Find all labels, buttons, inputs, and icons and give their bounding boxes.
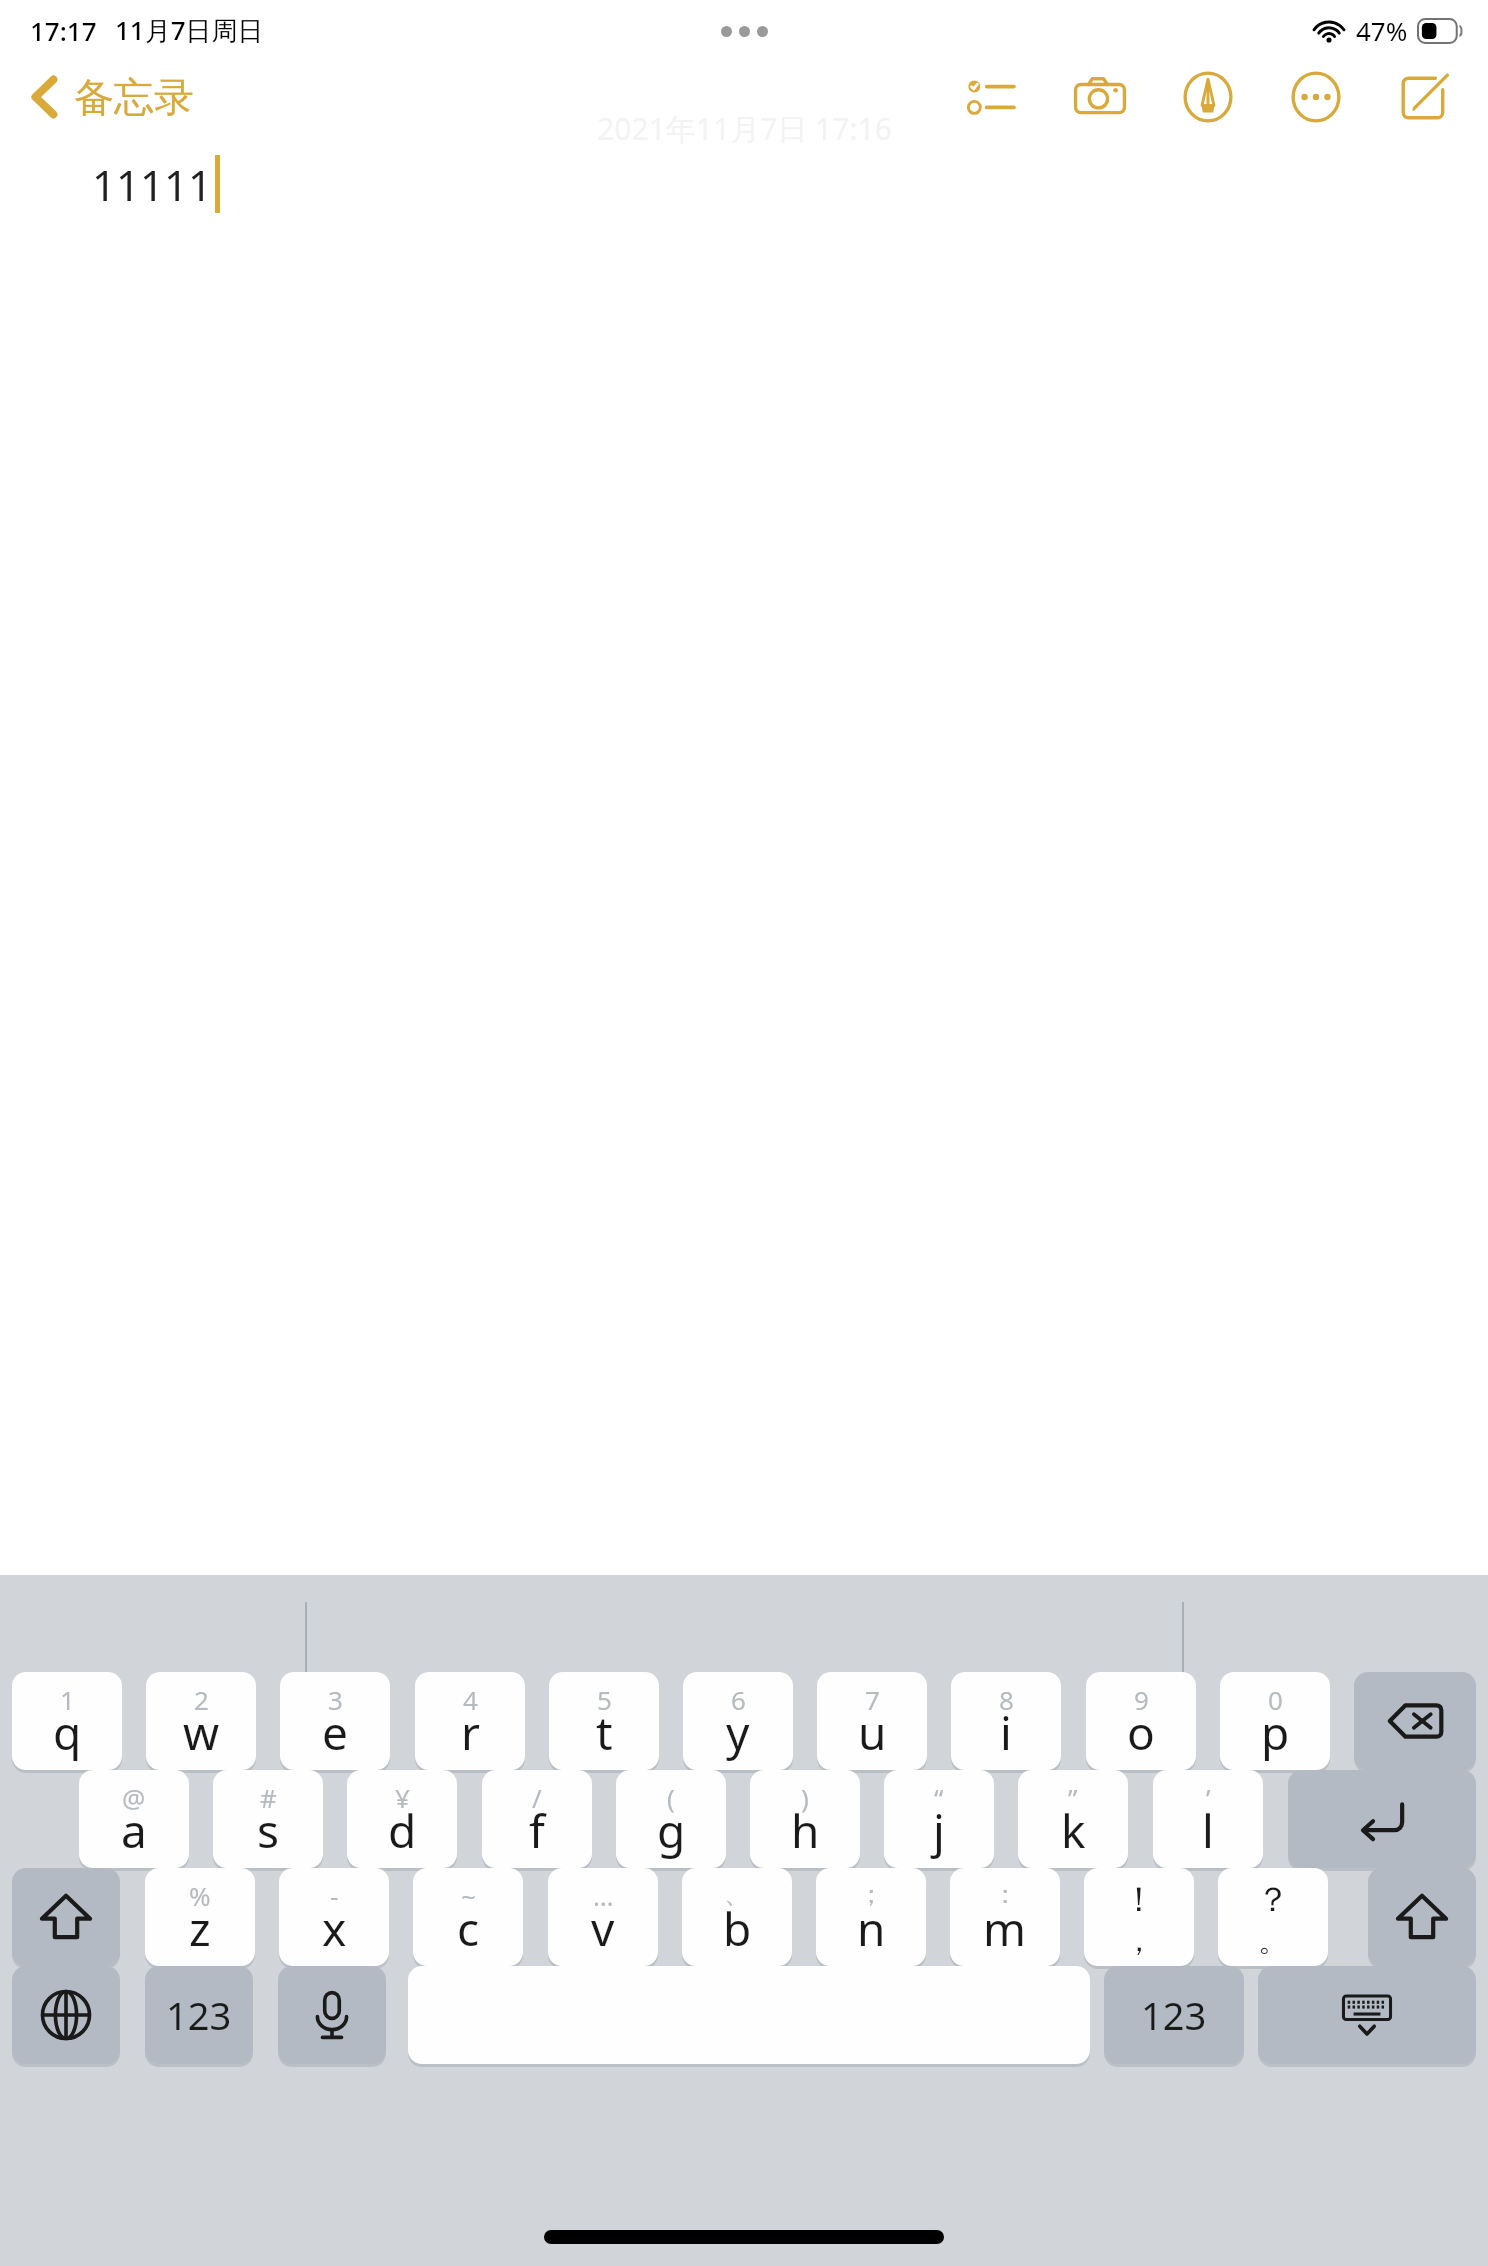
button[interactable]: ” bbox=[1018, 1770, 1128, 1868]
staticText: s bbox=[257, 1799, 280, 1862]
button[interactable]: ¥ bbox=[347, 1770, 457, 1868]
staticText: n bbox=[857, 1897, 886, 1960]
staticText: 9 bbox=[1134, 1682, 1149, 1717]
button[interactable]: 7 bbox=[817, 1672, 927, 1770]
staticText: y bbox=[726, 1701, 750, 1764]
staticText: g bbox=[657, 1799, 686, 1862]
staticText: 。 bbox=[1258, 1922, 1288, 1960]
button[interactable]: 备忘录 bbox=[22, 66, 202, 128]
staticText: 备忘录 bbox=[74, 72, 194, 122]
button[interactable]: “ bbox=[884, 1770, 994, 1868]
button[interactable]: Checklist bbox=[956, 62, 1028, 132]
button[interactable]: ； bbox=[816, 1868, 926, 1966]
button[interactable]: 6 bbox=[683, 1672, 793, 1770]
staticText: 1 bbox=[60, 1682, 75, 1717]
button[interactable]: Compose bbox=[1388, 62, 1460, 132]
staticText: 11111 bbox=[92, 156, 213, 213]
button[interactable]: ！ bbox=[1084, 1868, 1194, 1966]
staticText: w bbox=[183, 1701, 220, 1764]
staticText: u bbox=[858, 1701, 887, 1764]
button[interactable]: 、 bbox=[682, 1868, 792, 1966]
button[interactable]: 8 bbox=[951, 1672, 1061, 1770]
button[interactable]: 4 bbox=[415, 1672, 525, 1770]
staticText: ， bbox=[1124, 1922, 1154, 1960]
staticText: f bbox=[529, 1799, 545, 1862]
button[interactable]: Backspace bbox=[1354, 1672, 1476, 1770]
button[interactable]: ？ bbox=[1218, 1868, 1328, 1966]
staticText: ！ bbox=[1122, 1878, 1156, 1921]
staticText: 2021年11月7日 17:16 bbox=[597, 108, 892, 149]
staticText: 123 bbox=[1141, 1989, 1207, 2041]
button[interactable]: ’ bbox=[1153, 1770, 1263, 1868]
staticText: “ bbox=[934, 1780, 944, 1815]
button[interactable]: - bbox=[279, 1868, 389, 1966]
staticText: ” bbox=[1068, 1780, 1078, 1815]
button[interactable]: Switch keyboard bbox=[12, 1966, 120, 2064]
staticText: a bbox=[121, 1799, 147, 1862]
staticText: … bbox=[593, 1878, 614, 1913]
staticText: r bbox=[461, 1701, 480, 1764]
button[interactable]: 2 bbox=[146, 1672, 256, 1770]
staticText: 3 bbox=[328, 1682, 343, 1717]
button[interactable]: ~ bbox=[413, 1868, 523, 1966]
button[interactable]: 9 bbox=[1086, 1672, 1196, 1770]
staticText: b bbox=[723, 1897, 752, 1960]
button[interactable]: % bbox=[145, 1868, 255, 1966]
staticText: ？ bbox=[1256, 1878, 1290, 1921]
staticText: ~ bbox=[461, 1878, 476, 1913]
staticText: 47% bbox=[1356, 13, 1408, 48]
staticText: 11月7日周日 bbox=[115, 12, 264, 48]
button[interactable]: … bbox=[548, 1868, 658, 1966]
button[interactable]: ) bbox=[750, 1770, 860, 1868]
button[interactable]: 3 bbox=[280, 1672, 390, 1770]
staticText: v bbox=[591, 1897, 615, 1960]
button[interactable]: # bbox=[213, 1770, 323, 1868]
staticText: ( bbox=[667, 1780, 675, 1815]
staticText: / bbox=[532, 1780, 542, 1815]
button[interactable]: Camera bbox=[1064, 62, 1136, 132]
staticText: p bbox=[1261, 1701, 1290, 1764]
button[interactable]: 123 bbox=[145, 1966, 253, 2064]
staticText: i bbox=[1000, 1701, 1012, 1764]
staticText: 、 bbox=[724, 1878, 750, 1911]
staticText: ； bbox=[858, 1878, 884, 1911]
button[interactable]: ： bbox=[950, 1868, 1060, 1966]
staticText: 8 bbox=[999, 1682, 1014, 1717]
button[interactable]: Shift bbox=[12, 1868, 120, 1966]
button[interactable]: @ bbox=[79, 1770, 189, 1868]
button[interactable]: / bbox=[482, 1770, 592, 1868]
staticText: z bbox=[189, 1897, 211, 1960]
staticText: 5 bbox=[597, 1682, 612, 1717]
button[interactable]: More bbox=[1280, 62, 1352, 132]
staticText: ’ bbox=[1206, 1780, 1211, 1815]
staticText: ： bbox=[992, 1878, 1018, 1911]
button[interactable]: Shift bbox=[1368, 1868, 1476, 1966]
button[interactable]: Hide keyboard bbox=[1258, 1966, 1476, 2064]
staticText: ) bbox=[801, 1780, 809, 1815]
staticText: @ bbox=[122, 1780, 146, 1815]
staticText: h bbox=[791, 1799, 820, 1862]
staticText: - bbox=[330, 1878, 339, 1913]
staticText: e bbox=[322, 1701, 348, 1764]
button[interactable]: Dictation bbox=[278, 1966, 386, 2064]
staticText: # bbox=[260, 1780, 277, 1815]
staticText: c bbox=[457, 1897, 480, 1960]
staticText: m bbox=[983, 1897, 1027, 1960]
staticText: 7 bbox=[865, 1682, 880, 1717]
staticText: % bbox=[189, 1878, 211, 1913]
staticText: 0 bbox=[1268, 1682, 1283, 1717]
staticText: 6 bbox=[731, 1682, 746, 1717]
button[interactable]: 1 bbox=[12, 1672, 122, 1770]
button[interactable]: Return bbox=[1288, 1770, 1476, 1868]
button[interactable]: ( bbox=[616, 1770, 726, 1868]
button[interactable]: Markup bbox=[1172, 62, 1244, 132]
staticText: o bbox=[1127, 1701, 1155, 1764]
staticText: t bbox=[596, 1701, 613, 1764]
button[interactable]: 123 bbox=[1104, 1966, 1244, 2064]
staticText: j bbox=[933, 1799, 945, 1862]
button[interactable]: 5 bbox=[549, 1672, 659, 1770]
button[interactable]: 0 bbox=[1220, 1672, 1330, 1770]
staticText: ¥ bbox=[395, 1780, 410, 1815]
staticText: k bbox=[1061, 1799, 1086, 1862]
